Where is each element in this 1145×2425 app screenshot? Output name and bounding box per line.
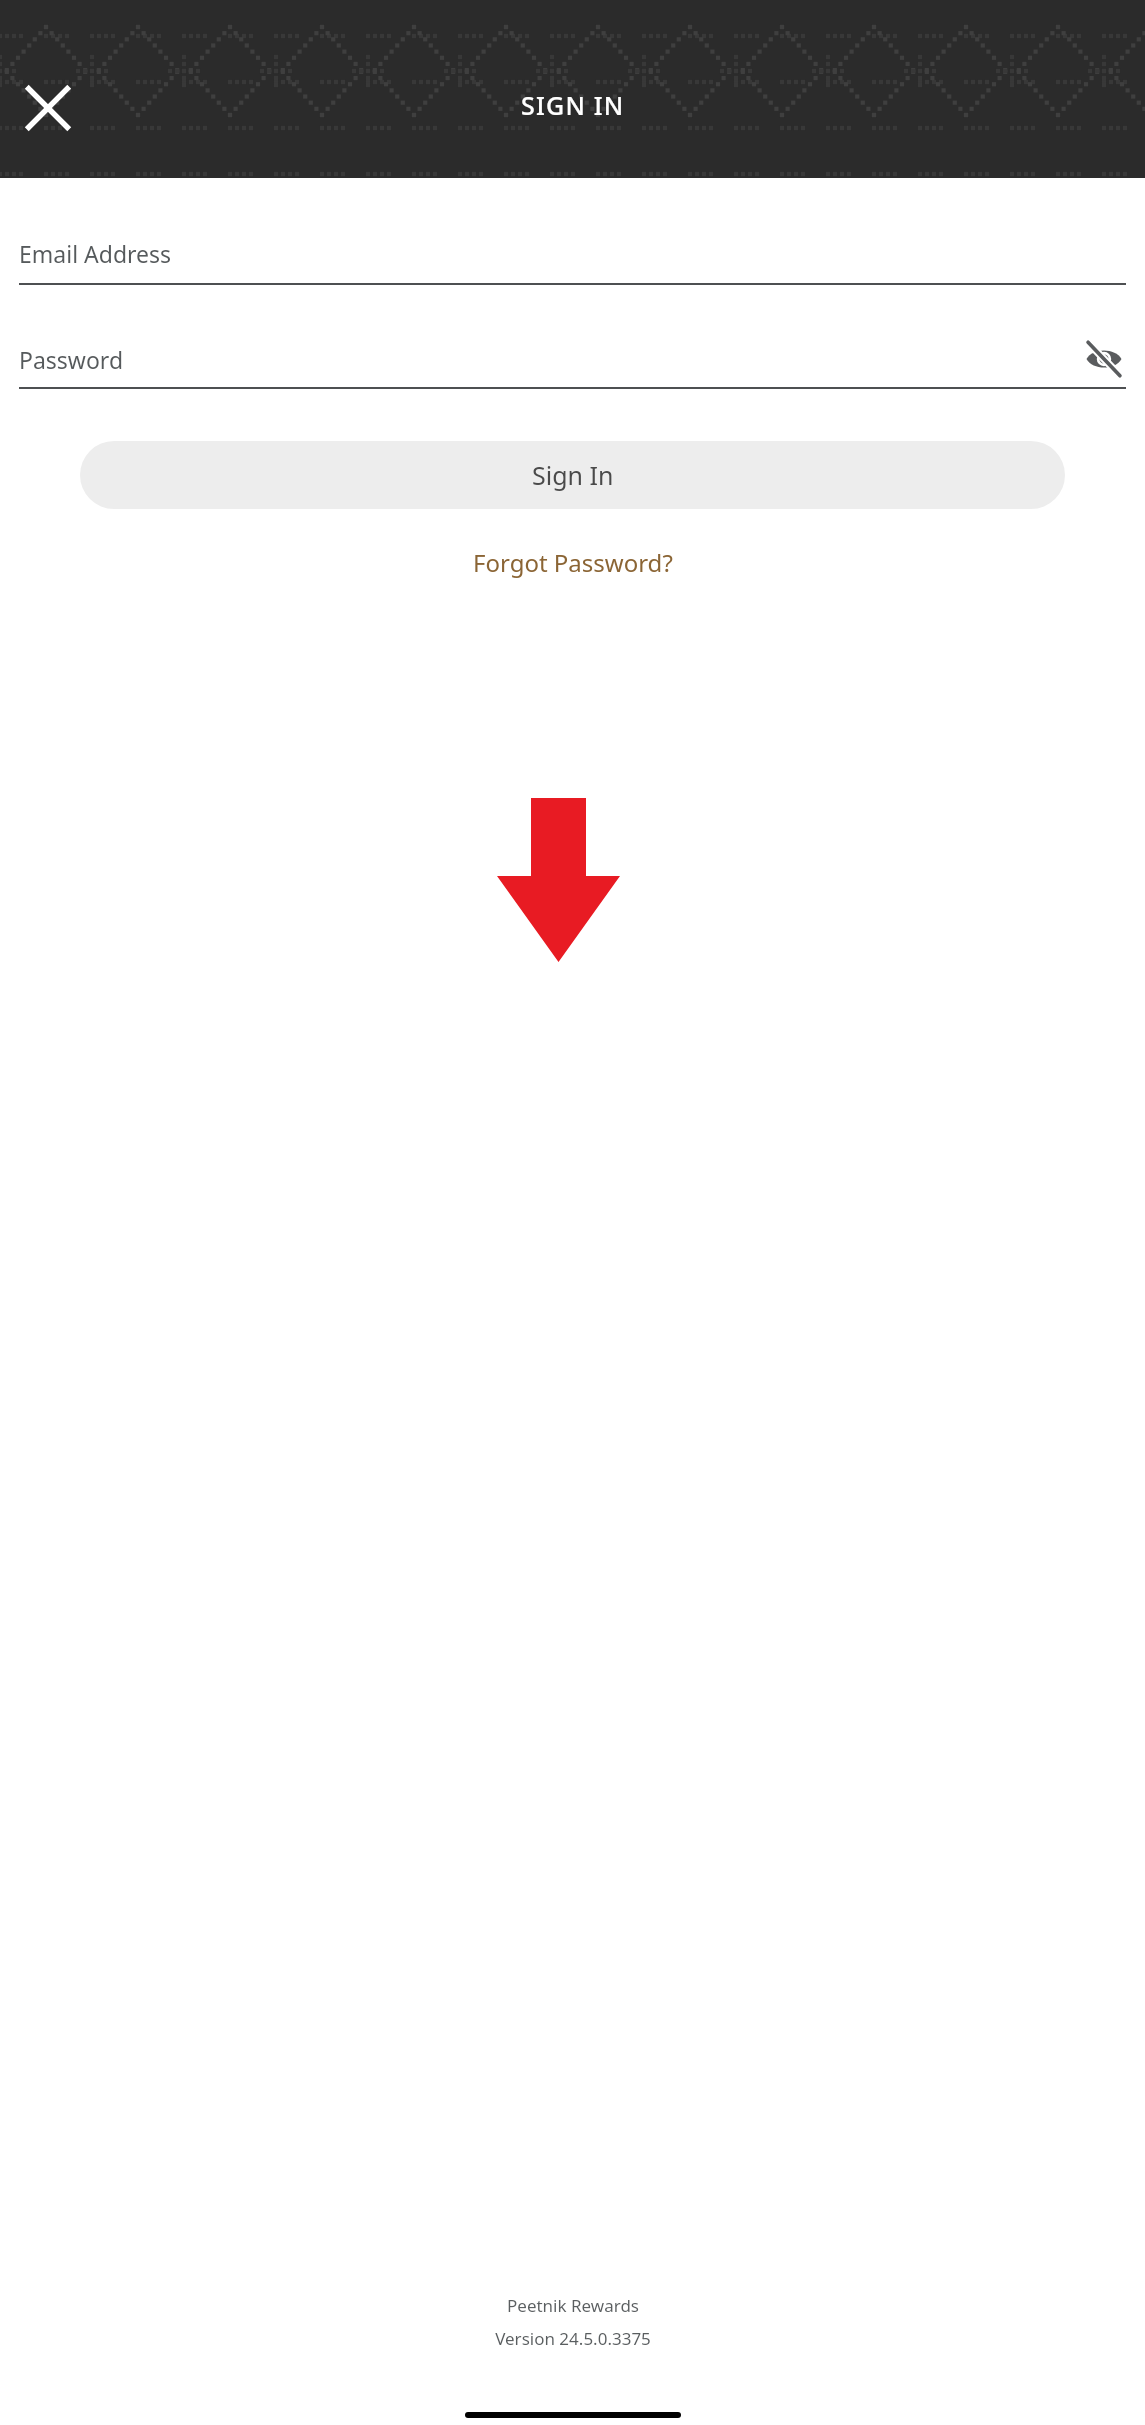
- button[interactable]: Show password: [1082, 337, 1126, 381]
- button[interactable]: Password: [19, 337, 1126, 389]
- staticText: Password: [19, 344, 124, 375]
- staticText: Sign In: [532, 458, 614, 492]
- button[interactable]: Email Address: [19, 238, 1126, 285]
- button[interactable]: Close: [8, 68, 88, 148]
- button[interactable]: Forgot Password?: [467, 540, 679, 585]
- staticText: Version 24.5.0.3375: [495, 2327, 651, 2350]
- staticText: Email Address: [19, 238, 172, 269]
- staticText: Forgot Password?: [473, 546, 673, 579]
- staticText: SIGN IN: [521, 88, 625, 122]
- staticText: Peetnik Rewards: [507, 2294, 639, 2317]
- button[interactable]: Sign In: [80, 441, 1065, 509]
